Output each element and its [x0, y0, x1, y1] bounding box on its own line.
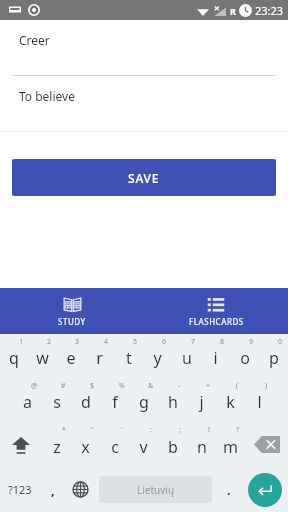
staticText: c [111, 436, 119, 458]
staticText: 4 [104, 337, 109, 347]
button[interactable]: Shift [0, 422, 42, 467]
staticText: s [53, 391, 61, 413]
staticText: To believe [19, 88, 75, 104]
button[interactable]: Enter [248, 473, 282, 507]
button[interactable]: & [129, 378, 158, 422]
staticText: w [36, 347, 49, 369]
staticText: 1 [19, 337, 24, 347]
button[interactable]: 9 [230, 334, 259, 378]
button[interactable]: 7 [172, 334, 201, 378]
button[interactable]: # [42, 378, 71, 422]
staticText: 3 [75, 337, 80, 347]
staticText: * [62, 425, 66, 435]
staticText: k [226, 391, 235, 413]
button[interactable]: * [42, 422, 71, 467]
staticText: ! [208, 425, 210, 435]
button[interactable]: 6 [143, 334, 172, 378]
staticText: FLASHCARDS [189, 316, 244, 327]
button[interactable]: ?123 [0, 467, 40, 512]
staticText: d [81, 391, 91, 413]
button[interactable]: , [40, 467, 66, 512]
staticText: b [168, 436, 178, 458]
button[interactable]: SAVE [12, 159, 276, 196]
staticText: 9 [249, 337, 254, 347]
button[interactable]: ) [245, 378, 274, 422]
staticText: : [150, 425, 152, 435]
staticText: r [96, 347, 103, 369]
button[interactable]: " [71, 422, 100, 467]
button[interactable]: ; [158, 422, 187, 467]
staticText: t [126, 347, 132, 369]
staticText: SAVE [128, 170, 160, 186]
staticText: " [91, 425, 94, 435]
staticText: f [112, 391, 118, 413]
button[interactable]: @ [13, 378, 42, 422]
button[interactable]: 1 [0, 334, 28, 378]
button[interactable]: 5 [114, 334, 143, 378]
staticText: 0 [278, 337, 283, 347]
staticText: # [61, 381, 66, 391]
button[interactable]: ! [187, 422, 216, 467]
staticText: l [257, 391, 262, 413]
staticText: h [168, 391, 178, 413]
staticText: $ [90, 381, 95, 391]
button[interactable]: . [216, 467, 242, 512]
button[interactable]: 2 [28, 334, 56, 378]
staticText: u [182, 347, 192, 369]
staticText: Lietuvių [137, 483, 175, 497]
staticText: v [139, 436, 148, 458]
button[interactable]: $ [71, 378, 100, 422]
staticText: j [199, 391, 204, 413]
staticText: m [223, 436, 238, 458]
button[interactable]: Change language [66, 467, 95, 512]
staticText: - [178, 381, 181, 391]
button[interactable]: ( [216, 378, 245, 422]
button[interactable]: 0 [259, 334, 288, 378]
button[interactable]: - [158, 378, 187, 422]
staticText: @ [31, 381, 38, 391]
staticText: Creer [19, 32, 50, 48]
button[interactable]: ' [100, 422, 129, 467]
staticText: ) [265, 381, 268, 391]
staticText: + [206, 381, 211, 391]
button[interactable]: 4 [85, 334, 114, 378]
staticText: y [153, 347, 162, 369]
staticText: a [23, 391, 32, 413]
staticText: ? [236, 425, 240, 435]
staticText: g [139, 391, 149, 413]
staticText: ( [236, 381, 239, 391]
staticText: . [227, 481, 231, 499]
staticText: 8 [220, 337, 225, 347]
staticText: % [119, 381, 125, 391]
button[interactable]: % [100, 378, 129, 422]
staticText: 7 [191, 337, 196, 347]
button[interactable]: 8 [201, 334, 230, 378]
staticText: ; [179, 425, 181, 435]
button[interactable]: ? [216, 422, 245, 467]
button[interactable]: Creer [0, 20, 288, 76]
staticText: o [240, 347, 250, 369]
staticText: & [148, 381, 154, 391]
button[interactable]: Backspace [245, 422, 288, 467]
button[interactable]: Lietuvių [99, 476, 212, 503]
button[interactable]: : [129, 422, 158, 467]
button[interactable]: To believe [0, 76, 288, 132]
staticText: ' [121, 425, 123, 435]
button[interactable]: 3 [56, 334, 85, 378]
staticText: e [66, 347, 76, 369]
button[interactable]: STUDY [0, 288, 144, 333]
staticText: 5 [133, 337, 138, 347]
staticText: q [9, 347, 19, 369]
staticText: x [81, 436, 90, 458]
staticText: STUDY [58, 316, 86, 327]
staticText: n [197, 436, 207, 458]
staticText: 6 [162, 337, 167, 347]
button[interactable]: + [187, 378, 216, 422]
staticText: i [213, 347, 218, 369]
staticText: ?123 [8, 482, 32, 497]
staticText: p [269, 347, 279, 369]
button[interactable]: FLASHCARDS [144, 288, 288, 333]
staticText: R [230, 5, 236, 17]
staticText: , [51, 481, 55, 499]
staticText: z [53, 436, 61, 458]
